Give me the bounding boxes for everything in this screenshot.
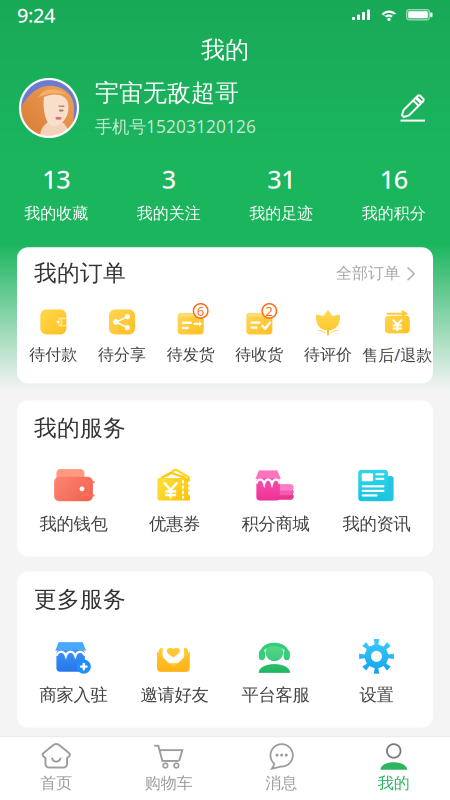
staticText: 优惠券	[149, 513, 200, 534]
button[interactable]: 13	[0, 160, 112, 225]
staticText: 平台客服	[241, 684, 309, 706]
button[interactable]: 我的钱包	[23, 468, 124, 534]
button[interactable]: 商家入驻	[23, 639, 124, 706]
button[interactable]: 待分享	[88, 308, 156, 365]
button[interactable]: 16	[337, 160, 450, 225]
staticText: 售后/退款	[362, 344, 432, 365]
staticText: 我的	[201, 35, 249, 65]
staticText: 全部订单	[336, 263, 400, 283]
button[interactable]: 全部订单	[336, 263, 416, 283]
staticText: 我的积分	[362, 204, 426, 223]
staticText: 我的服务	[34, 414, 126, 442]
staticText: 我的钱包	[39, 513, 107, 534]
button[interactable]: 售后/退款	[362, 307, 431, 365]
staticText: 我的足迹	[249, 204, 313, 223]
staticText: 待分享	[98, 345, 146, 365]
staticText: 消息	[265, 773, 297, 793]
button[interactable]: 2	[225, 308, 294, 365]
staticText: 我的	[378, 773, 410, 793]
staticText: 宇宙无敌超哥	[95, 78, 239, 108]
button[interactable]: 我的资讯	[326, 468, 427, 534]
button[interactable]: 待评价	[294, 308, 362, 365]
button[interactable]: 积分商城	[225, 468, 326, 534]
staticText: 商家入驻	[39, 684, 107, 706]
staticText: 设置	[359, 684, 393, 706]
button[interactable]: 消息	[225, 736, 337, 800]
staticText: 31	[267, 162, 295, 196]
staticText: 手机号15203120126	[95, 115, 256, 138]
staticText: 我的资讯	[342, 513, 410, 534]
staticText: 更多服务	[34, 585, 126, 613]
button[interactable]: 我的	[337, 736, 450, 800]
button[interactable]: 平台客服	[225, 639, 326, 706]
button[interactable]: 3	[112, 160, 225, 225]
staticText: 我的收藏	[24, 204, 88, 223]
staticText: 16	[380, 162, 408, 196]
button[interactable]: 首页	[0, 736, 112, 800]
staticText: 首页	[40, 773, 72, 793]
staticText: 9:24	[17, 2, 55, 28]
button[interactable]: 购物车	[112, 736, 225, 800]
staticText: 3	[162, 162, 176, 196]
staticText: 积分商城	[241, 513, 309, 534]
staticText: 我的关注	[137, 204, 201, 223]
staticText: 购物车	[145, 773, 193, 793]
button[interactable]: 邀请好友	[124, 639, 225, 706]
staticText: 邀请好友	[140, 684, 208, 706]
button[interactable]: 31	[225, 160, 337, 225]
button[interactable]: 6	[156, 308, 225, 365]
button[interactable]: 编辑资料	[396, 91, 430, 125]
button[interactable]: 优惠券	[124, 468, 225, 534]
button[interactable]: 设置	[326, 639, 427, 706]
staticText: 待付款	[29, 345, 77, 365]
staticText: 待收货	[235, 345, 283, 365]
staticText: 待评价	[304, 345, 352, 365]
staticText: 2	[265, 302, 273, 320]
staticText: 我的订单	[34, 259, 126, 287]
button[interactable]: 待付款	[19, 308, 88, 365]
staticText: 6	[197, 302, 205, 320]
staticText: 13	[42, 162, 70, 196]
staticText: 待发货	[167, 345, 215, 365]
